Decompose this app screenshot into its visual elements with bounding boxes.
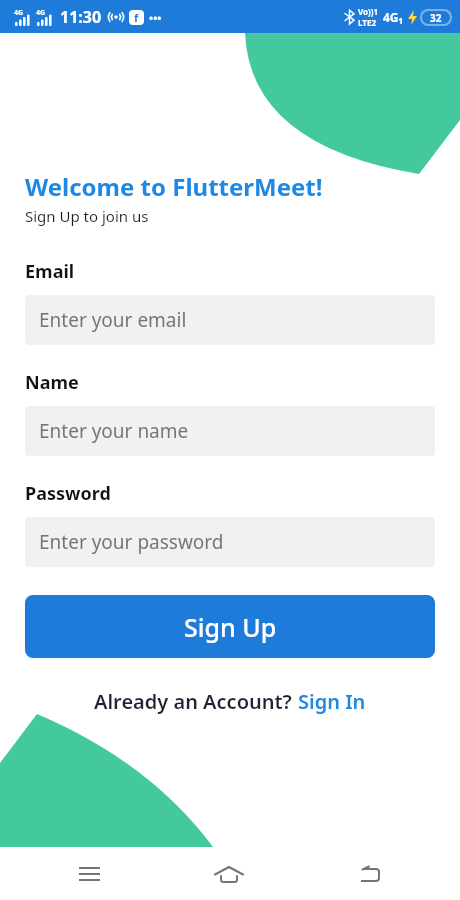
staticText: Name <box>25 370 79 395</box>
staticText: Enter your name <box>39 418 189 444</box>
staticText: Email <box>25 259 75 284</box>
staticText: 4G₁ <box>383 9 404 25</box>
staticText: Password <box>25 481 111 506</box>
button[interactable]: Enter your email <box>25 295 435 345</box>
staticText: 4G <box>14 8 24 18</box>
button[interactable]: Sign In <box>298 688 366 715</box>
button[interactable] <box>329 848 409 900</box>
staticText: Enter your password <box>39 529 224 555</box>
staticText: Already an Account? <box>94 688 298 715</box>
button[interactable]: Enter your name <box>25 406 435 456</box>
staticText: LTE2 <box>358 17 376 28</box>
staticText: Sign Up to join us <box>25 206 149 226</box>
staticText: Welcome to FlutterMeet! <box>25 170 323 203</box>
staticText: f <box>134 10 139 25</box>
staticText: 11:30 <box>60 6 102 28</box>
staticText: 32 <box>430 11 442 25</box>
button[interactable]: Sign Up <box>25 595 435 658</box>
staticText: Sign Up <box>184 610 277 644</box>
staticText: Enter your email <box>39 307 187 333</box>
button[interactable] <box>49 848 129 900</box>
button[interactable]: Enter your password <box>25 517 435 567</box>
staticText: ••• <box>149 10 162 25</box>
button[interactable] <box>189 848 269 900</box>
staticText: Vo))1 <box>358 6 379 17</box>
staticText: 4G <box>36 8 46 18</box>
